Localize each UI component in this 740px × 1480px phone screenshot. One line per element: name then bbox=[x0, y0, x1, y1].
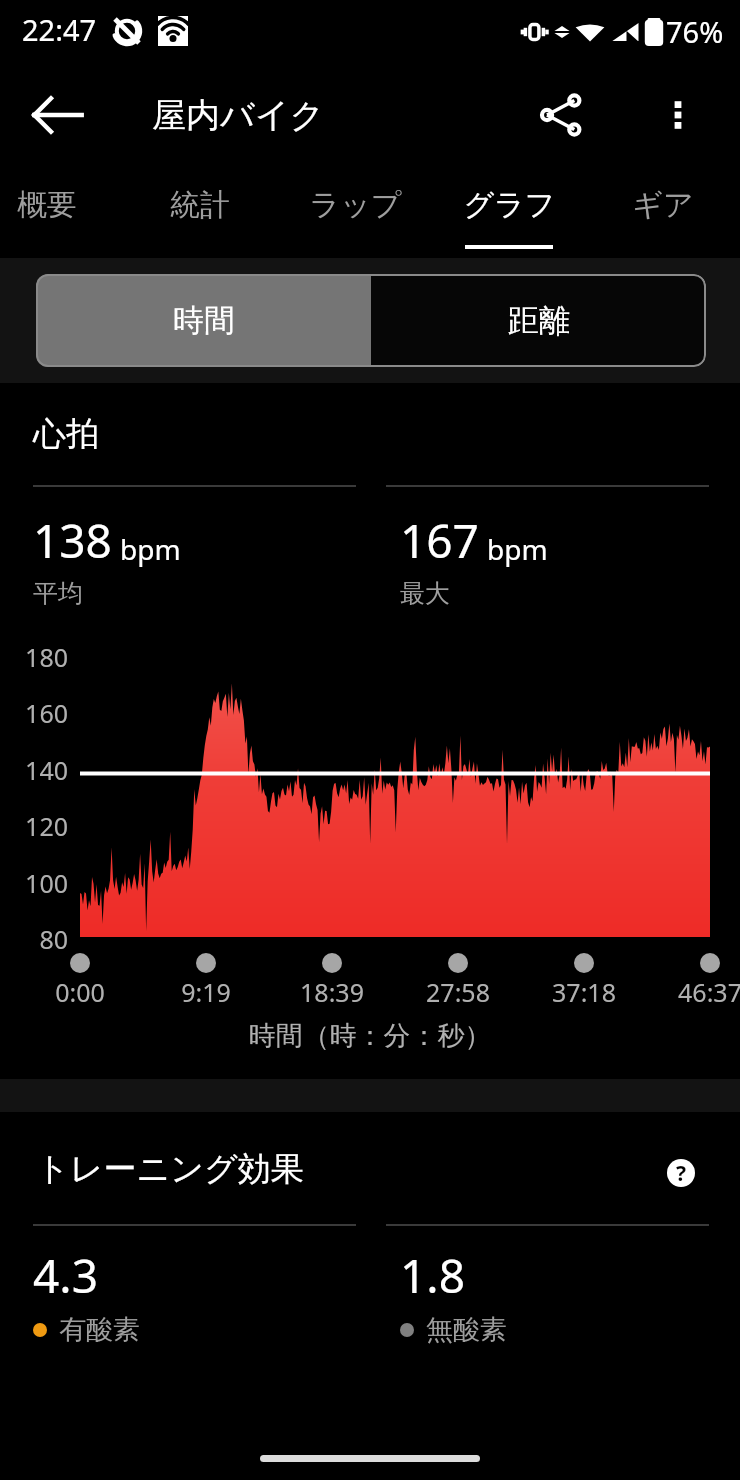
button[interactable]: Share bbox=[532, 85, 592, 145]
staticText: 9:19 bbox=[146, 975, 266, 1009]
staticText: 46:37 bbox=[650, 975, 740, 1009]
staticText: 76% bbox=[666, 12, 724, 51]
staticText: 80 bbox=[0, 922, 68, 956]
staticText: 140 bbox=[0, 753, 68, 787]
staticText: 無酸素 bbox=[426, 1313, 507, 1347]
staticText: ? bbox=[676, 1159, 687, 1188]
button[interactable]: 概要 bbox=[0, 168, 121, 258]
staticText: 屋内バイク bbox=[152, 94, 325, 137]
staticText: bpm bbox=[120, 530, 181, 568]
staticText: 160 bbox=[0, 696, 68, 730]
staticText: 120 bbox=[0, 809, 68, 843]
staticText: bpm bbox=[487, 530, 548, 568]
staticText: 統計 bbox=[170, 186, 230, 224]
staticText: 概要 bbox=[17, 186, 77, 224]
staticText: 180 bbox=[0, 640, 68, 674]
staticText: 138 bbox=[33, 509, 112, 572]
button[interactable]: 時間 bbox=[36, 274, 371, 367]
staticText: ラップ bbox=[309, 186, 402, 224]
staticText: 0:00 bbox=[20, 975, 140, 1009]
button[interactable]: More options bbox=[648, 85, 708, 145]
staticText: グラフ bbox=[463, 186, 556, 224]
button[interactable]: 統計 bbox=[126, 168, 274, 258]
staticText: 距離 bbox=[508, 301, 570, 340]
button[interactable]: Help bbox=[656, 1148, 706, 1198]
button[interactable]: ギア bbox=[589, 168, 737, 258]
staticText: 時間（時：分：秒） bbox=[0, 1019, 740, 1053]
staticText: 18:39 bbox=[272, 975, 392, 1009]
staticText: 1.8 bbox=[400, 1244, 465, 1307]
staticText: 心拍 bbox=[33, 413, 99, 455]
staticText: 167 bbox=[400, 509, 479, 572]
staticText: 37:18 bbox=[524, 975, 644, 1009]
button[interactable]: グラフ bbox=[435, 168, 583, 258]
staticText: 最大 bbox=[400, 578, 450, 609]
button[interactable]: 距離 bbox=[371, 274, 706, 367]
staticText: 22:47 bbox=[22, 10, 97, 49]
staticText: 時間 bbox=[173, 301, 235, 340]
staticText: 4.3 bbox=[33, 1244, 98, 1307]
staticText: 平均 bbox=[33, 578, 83, 609]
staticText: 有酸素 bbox=[59, 1313, 140, 1347]
staticText: 100 bbox=[0, 866, 68, 900]
button[interactable]: ラップ bbox=[281, 168, 429, 258]
button[interactable]: Back bbox=[26, 83, 90, 147]
staticText: 27:58 bbox=[398, 975, 518, 1009]
staticText: トレーニング効果 bbox=[36, 1148, 304, 1190]
staticText: ギア bbox=[632, 186, 694, 224]
